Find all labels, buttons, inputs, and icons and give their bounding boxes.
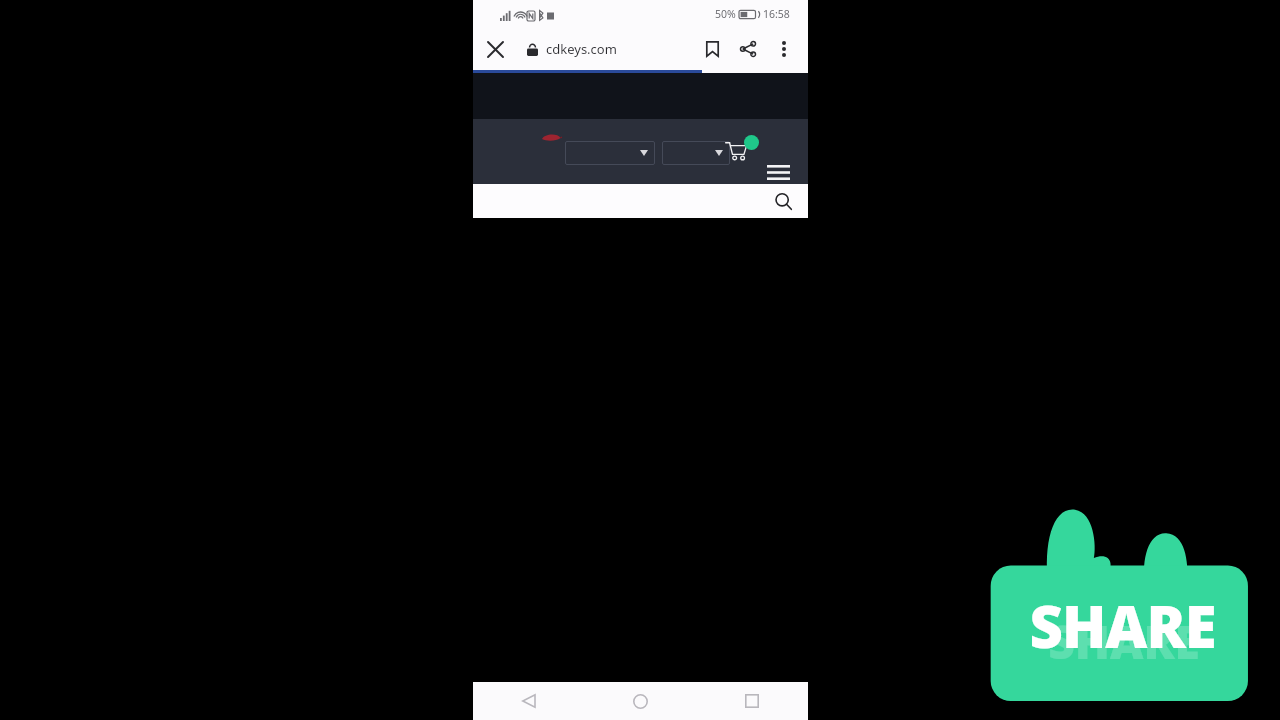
button[interactable]: cdkeys.com [546,40,617,58]
button[interactable]: Back [473,682,584,720]
button[interactable]: Select [662,141,730,165]
button[interactable]: Notification [744,135,759,150]
button[interactable]: Recent apps [696,682,808,720]
staticText: 50% [715,7,736,21]
button[interactable] [473,184,808,218]
button[interactable]: Cart [725,139,747,161]
staticText: 16:58 [763,7,790,21]
button[interactable]: Share [730,31,766,67]
button[interactable]: Close [473,28,517,70]
button[interactable]: Menu [764,163,792,181]
button[interactable]: Home [584,682,696,720]
staticText: SHARE [1048,610,1200,673]
button[interactable]: More options [766,31,802,67]
button[interactable]: CDKeys logo [542,133,562,141]
button[interactable]: Select [565,141,655,165]
staticText: SHARE [1029,586,1216,665]
button[interactable]: Bookmark [694,31,730,67]
